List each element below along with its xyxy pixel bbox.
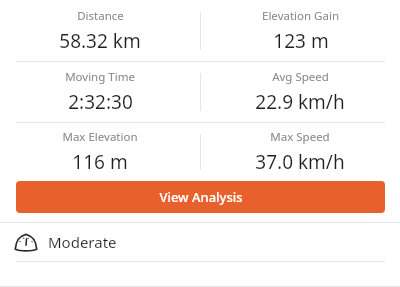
- staticText: View Analysis: [159, 188, 243, 206]
- staticText: Moving Time: [65, 69, 135, 85]
- staticText: Avg Speed: [272, 69, 329, 85]
- staticText: 116 m: [72, 149, 128, 175]
- button[interactable]: View Analysis: [16, 181, 385, 213]
- staticText: Max Speed: [270, 129, 330, 145]
- staticText: 22.9 km/h: [255, 89, 345, 115]
- button[interactable]: Effort level: [0, 223, 400, 261]
- staticText: Distance: [77, 8, 124, 24]
- staticText: 2:32:30: [68, 89, 133, 115]
- staticText: 123 m: [273, 28, 329, 54]
- staticText: Moderate: [48, 232, 117, 252]
- staticText: 37.0 km/h: [255, 149, 345, 175]
- staticText: Elevation Gain: [262, 8, 339, 24]
- other: Effort level: [14, 230, 38, 254]
- staticText: Max Elevation: [62, 129, 138, 145]
- staticText: 58.32 km: [59, 28, 141, 54]
